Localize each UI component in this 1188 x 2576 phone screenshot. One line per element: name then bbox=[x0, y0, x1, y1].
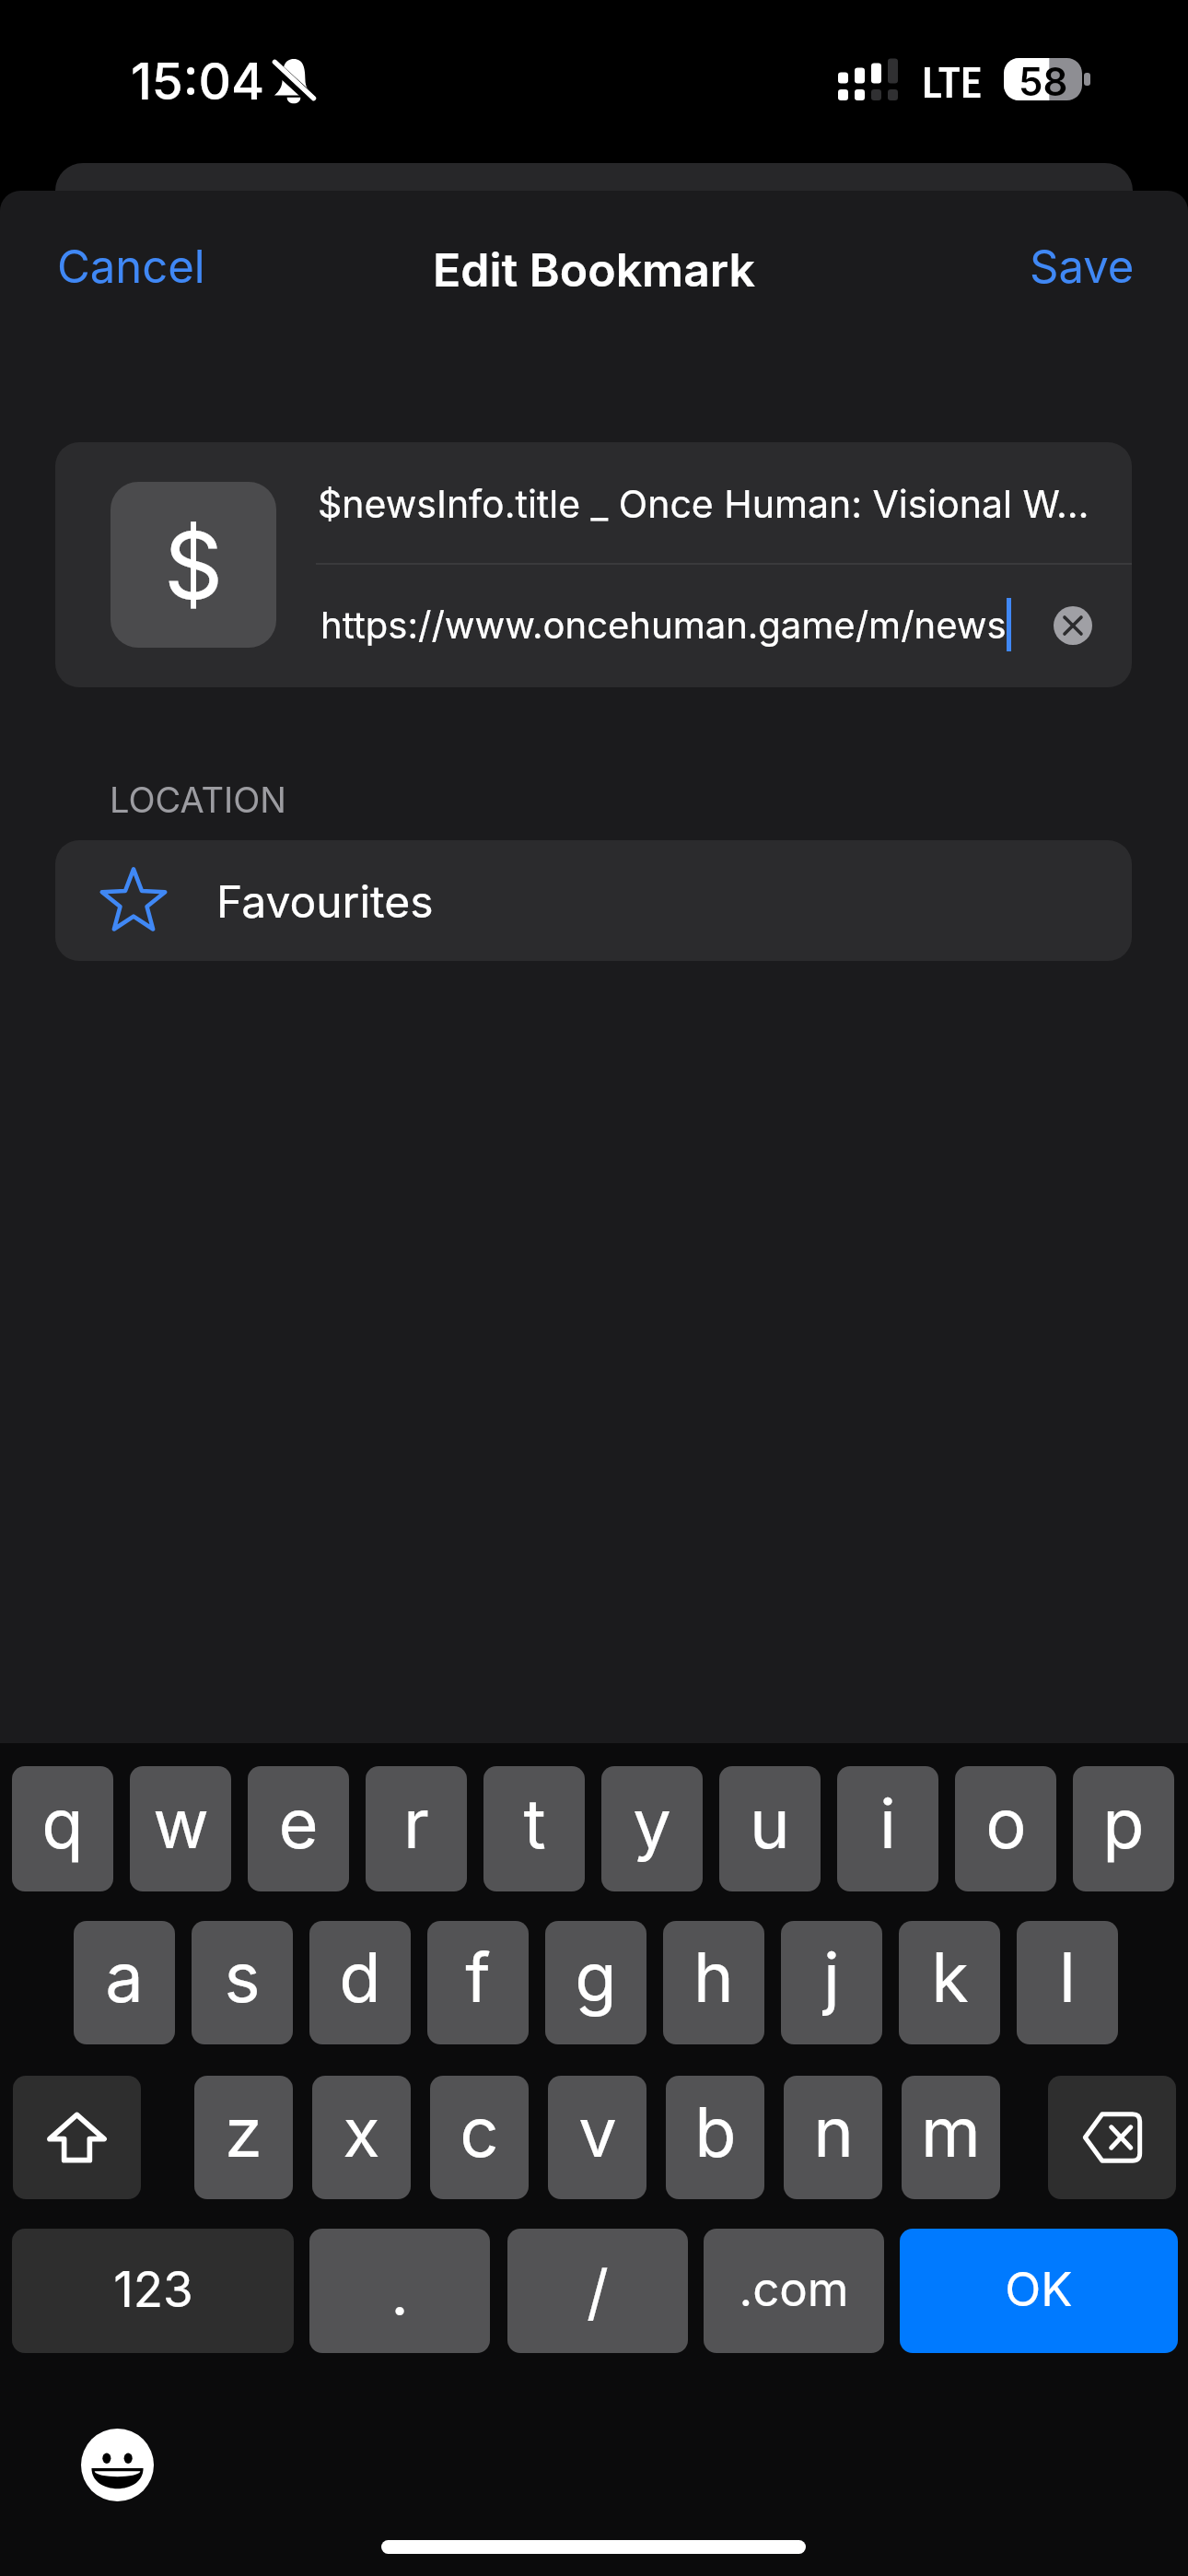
staticText: OK bbox=[1005, 2261, 1073, 2318]
button[interactable]: j bbox=[781, 1921, 882, 2044]
button[interactable]: o bbox=[955, 1766, 1056, 1891]
staticText: Edit Bookmark bbox=[433, 242, 755, 298]
button[interactable]: h bbox=[663, 1921, 764, 2044]
staticText: i bbox=[879, 1782, 896, 1865]
staticText: l bbox=[1059, 1936, 1076, 2019]
staticText: LTE bbox=[922, 58, 982, 108]
staticText: $ bbox=[164, 509, 224, 621]
staticText: 15:04 bbox=[131, 51, 265, 112]
staticText: u bbox=[750, 1782, 790, 1865]
button[interactable]: Shift bbox=[13, 2076, 141, 2199]
staticText: . bbox=[390, 2254, 409, 2330]
staticText: Save bbox=[1030, 240, 1135, 294]
button[interactable]: OK bbox=[900, 2229, 1178, 2353]
staticText: e bbox=[278, 1782, 319, 1865]
button[interactable]: f bbox=[427, 1921, 529, 2044]
button[interactable]: p bbox=[1073, 1766, 1174, 1891]
staticText: v bbox=[578, 2090, 617, 2173]
staticText: Cancel bbox=[57, 240, 205, 294]
button[interactable]: s bbox=[192, 1921, 293, 2044]
staticText: j bbox=[823, 1936, 840, 2019]
button[interactable]: n bbox=[784, 2076, 882, 2199]
button[interactable]: t bbox=[483, 1766, 585, 1891]
staticText: d bbox=[339, 1936, 381, 2019]
staticText: n bbox=[813, 2090, 854, 2173]
button[interactable]: m bbox=[902, 2076, 1000, 2199]
staticText: x bbox=[343, 2090, 380, 2173]
staticText: $newsInfo.title _ Once Human: Visional W… bbox=[318, 481, 1089, 527]
button[interactable]: . bbox=[309, 2229, 490, 2353]
staticText: m bbox=[921, 2090, 981, 2173]
button[interactable]: a bbox=[74, 1921, 175, 2044]
staticText: g bbox=[575, 1936, 617, 2019]
staticText: / bbox=[587, 2255, 609, 2329]
staticText: r bbox=[403, 1782, 429, 1865]
staticText: .com bbox=[739, 2261, 849, 2318]
button[interactable]: e bbox=[248, 1766, 349, 1891]
button[interactable]: Clear text bbox=[1054, 606, 1092, 645]
staticText: LOCATION bbox=[110, 779, 286, 821]
button[interactable]: u bbox=[719, 1766, 821, 1891]
staticText: s bbox=[224, 1936, 261, 2019]
staticText: Favourites bbox=[216, 874, 434, 928]
staticText: a bbox=[105, 1936, 144, 2019]
button[interactable]: r bbox=[366, 1766, 467, 1891]
button[interactable]: x bbox=[312, 2076, 411, 2199]
button[interactable]: Backspace bbox=[1048, 2076, 1176, 2199]
button[interactable]: v bbox=[548, 2076, 646, 2199]
button[interactable]: / bbox=[507, 2229, 688, 2353]
button[interactable]: i bbox=[837, 1766, 938, 1891]
button[interactable]: q bbox=[12, 1766, 113, 1891]
button[interactable]: g bbox=[545, 1921, 646, 2044]
button[interactable]: l bbox=[1017, 1921, 1118, 2044]
button[interactable]: k bbox=[899, 1921, 1000, 2044]
button[interactable]: y bbox=[601, 1766, 703, 1891]
button[interactable]: Emoji keyboard bbox=[81, 2429, 154, 2501]
staticText: t bbox=[523, 1782, 546, 1865]
staticText: w bbox=[153, 1782, 209, 1865]
staticText: k bbox=[931, 1936, 969, 2019]
staticText: o bbox=[985, 1782, 1027, 1865]
button[interactable]: c bbox=[430, 2076, 529, 2199]
button[interactable]: d bbox=[309, 1921, 411, 2044]
button[interactable]: Save bbox=[1009, 227, 1155, 307]
staticText: f bbox=[465, 1936, 491, 2019]
staticText: y bbox=[633, 1782, 671, 1865]
button[interactable]: z bbox=[194, 2076, 293, 2199]
staticText: 123 bbox=[113, 2260, 193, 2319]
button[interactable]: .com bbox=[704, 2229, 884, 2353]
button[interactable]: b bbox=[666, 2076, 764, 2199]
button[interactable]: w bbox=[130, 1766, 231, 1891]
button[interactable]: Cancel bbox=[37, 227, 226, 307]
button[interactable]: Favourites bbox=[55, 840, 1132, 961]
staticText: q bbox=[41, 1782, 84, 1865]
staticText: h bbox=[693, 1936, 734, 2019]
staticText: 58 bbox=[1019, 58, 1068, 100]
button[interactable]: 123 bbox=[12, 2229, 294, 2353]
staticText: z bbox=[225, 2090, 262, 2173]
staticText: p bbox=[1102, 1782, 1145, 1865]
staticText: https://www.oncehuman.game/m/news bbox=[320, 603, 1007, 647]
staticText: b bbox=[694, 2090, 737, 2173]
staticText: c bbox=[460, 2090, 499, 2173]
